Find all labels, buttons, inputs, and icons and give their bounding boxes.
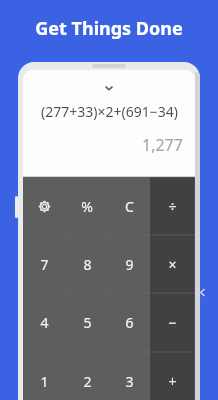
staticText: % <box>81 197 93 216</box>
button[interactable]: 4 <box>23 293 66 352</box>
staticText: 1,277 <box>142 134 183 156</box>
button[interactable]: − <box>150 293 195 352</box>
staticText: 6 <box>125 313 134 332</box>
button[interactable]: C <box>108 177 150 235</box>
button[interactable]: Settings <box>23 177 66 235</box>
button[interactable]: 5 <box>66 293 108 352</box>
button[interactable]: × <box>150 235 195 293</box>
staticText: × <box>168 255 177 274</box>
button[interactable]: + <box>150 352 195 400</box>
staticText: 4 <box>40 313 49 332</box>
staticText: 1 <box>40 372 49 391</box>
staticText: ÷ <box>168 197 177 216</box>
button[interactable]: 7 <box>23 235 66 293</box>
button[interactable]: ÷ <box>150 177 195 235</box>
button[interactable]: Collapse <box>101 80 117 96</box>
button[interactable]: 8 <box>66 235 108 293</box>
button[interactable]: 3 <box>108 352 150 400</box>
staticText: 5 <box>83 313 92 332</box>
staticText: 2 <box>83 372 92 391</box>
staticText: (277+33)×2+(691−34) <box>41 102 178 121</box>
staticText: − <box>168 313 177 332</box>
button[interactable]: 6 <box>108 293 150 352</box>
staticText: 7 <box>40 255 49 274</box>
button[interactable]: % <box>66 177 108 235</box>
staticText: + <box>168 372 177 391</box>
staticText: Get Things Done <box>35 16 183 41</box>
staticText: 8 <box>83 255 92 274</box>
button[interactable]: 2 <box>66 352 108 400</box>
button[interactable]: 1 <box>23 352 66 400</box>
staticText: C <box>125 197 134 216</box>
staticText: 9 <box>125 255 134 274</box>
button[interactable]: 9 <box>108 235 150 293</box>
other: Back <box>196 286 208 298</box>
staticText: 3 <box>125 372 134 391</box>
